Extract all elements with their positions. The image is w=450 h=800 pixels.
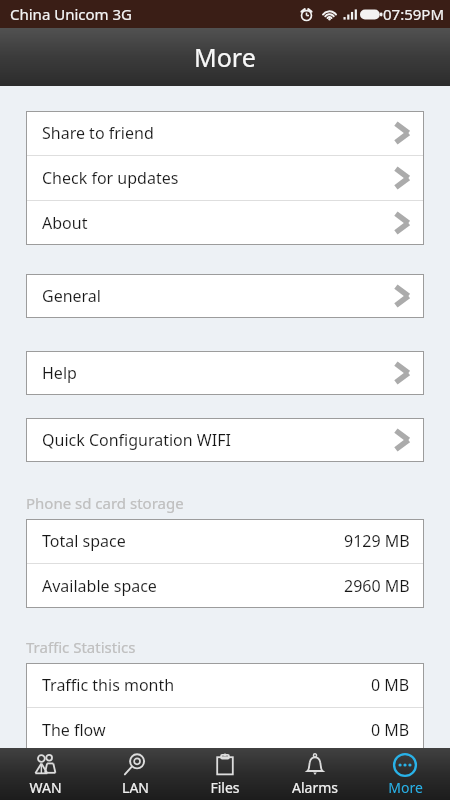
staticText: 07:59PM bbox=[383, 4, 445, 24]
button[interactable]: Help bbox=[26, 351, 424, 395]
staticText: Files bbox=[210, 778, 240, 797]
staticText: More bbox=[194, 40, 256, 74]
staticText: 0 MB bbox=[371, 674, 410, 696]
button[interactable]: Available space bbox=[26, 564, 424, 608]
staticText: General bbox=[42, 285, 101, 307]
button[interactable]: Alarms bbox=[270, 748, 360, 800]
button[interactable]: Check for updates bbox=[26, 156, 424, 200]
staticText: 0 MB bbox=[371, 719, 410, 741]
staticText: WAN bbox=[29, 778, 62, 797]
staticText: 2960 MB bbox=[344, 575, 410, 597]
staticText: Total space bbox=[42, 530, 126, 552]
staticText: 9129 MB bbox=[344, 530, 410, 552]
staticText: Alarms bbox=[292, 778, 338, 797]
staticText: Help bbox=[42, 362, 77, 384]
staticText: About bbox=[42, 212, 88, 234]
staticText: More bbox=[388, 778, 423, 797]
staticText: Quick Configuration WIFI bbox=[42, 429, 231, 451]
button[interactable]: More bbox=[360, 748, 450, 800]
button[interactable]: Share to friend bbox=[26, 111, 424, 155]
staticText: China Unicom 3G bbox=[10, 4, 133, 24]
staticText: Phone sd card storage bbox=[26, 493, 184, 513]
staticText: Traffic this month bbox=[42, 674, 175, 696]
staticText: Traffic Statistics bbox=[26, 637, 136, 657]
button[interactable]: WAN bbox=[0, 748, 90, 800]
button[interactable]: The flow bbox=[26, 708, 424, 752]
staticText: Available space bbox=[42, 575, 157, 597]
staticText: The flow bbox=[42, 719, 106, 741]
button[interactable]: LAN bbox=[90, 748, 180, 800]
button[interactable]: Total space bbox=[26, 519, 424, 563]
button[interactable]: Quick Configuration WIFI bbox=[26, 418, 424, 462]
button[interactable]: General bbox=[26, 274, 424, 318]
staticText: Share to friend bbox=[42, 122, 154, 144]
staticText: LAN bbox=[122, 778, 149, 797]
button[interactable]: Files bbox=[180, 748, 270, 800]
button[interactable]: Traffic this month bbox=[26, 663, 424, 707]
button[interactable]: About bbox=[26, 201, 424, 245]
staticText: Check for updates bbox=[42, 167, 179, 189]
